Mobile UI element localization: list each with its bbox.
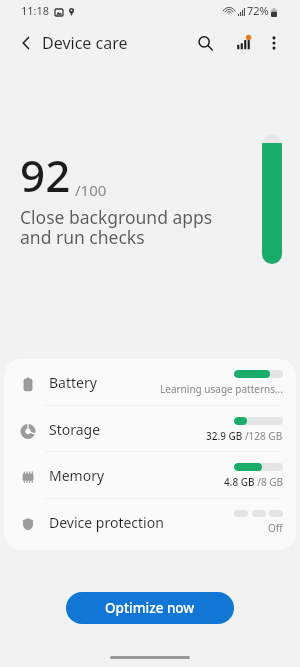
staticText: Battery — [49, 373, 97, 392]
staticText: 11:18 — [21, 3, 50, 18]
staticText: 92 — [20, 145, 71, 205]
staticText: Close background apps and run checks — [20, 205, 213, 250]
button[interactable]: Storage — [4, 406, 296, 453]
button[interactable]: Optimize now — [66, 592, 234, 624]
button[interactable]: Search — [189, 27, 221, 59]
staticText: Off — [268, 521, 283, 535]
staticText: Optimize now — [105, 599, 195, 617]
button[interactable]: Battery — [4, 359, 296, 406]
button[interactable]: Device protection — [4, 499, 296, 546]
button[interactable]: Memory — [4, 452, 296, 499]
button[interactable]: Diagnostics — [227, 27, 259, 59]
staticText: Device protection — [49, 513, 164, 532]
staticText: Memory — [49, 466, 105, 485]
button[interactable]: More options — [258, 27, 290, 59]
staticText: 4.8 GB /8 GB — [224, 475, 283, 489]
staticText: Device care — [42, 32, 128, 54]
staticText: 32.9 GB /128 GB — [206, 429, 283, 443]
staticText: 72% — [247, 3, 269, 18]
staticText: Storage — [49, 420, 101, 439]
staticText: /100 — [75, 180, 107, 200]
staticText: Learning usage patterns… — [160, 382, 283, 396]
button[interactable]: Back — [10, 27, 42, 59]
